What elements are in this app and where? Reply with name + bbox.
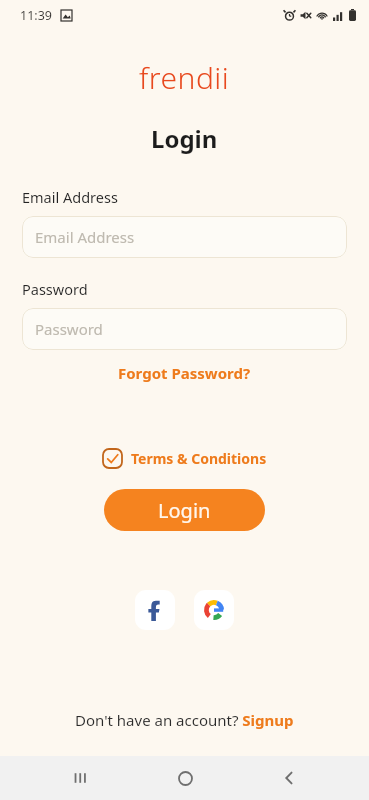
staticText: Login — [151, 122, 218, 155]
button[interactable]: Home — [161, 756, 209, 800]
staticText: frendii — [139, 57, 230, 98]
button[interactable]: Recents — [56, 756, 104, 800]
staticText: Email Address — [35, 227, 135, 247]
button[interactable]: Back — [265, 756, 313, 800]
button[interactable]: Password — [22, 308, 347, 350]
button[interactable]: Login — [104, 489, 265, 531]
staticText: Password — [35, 319, 103, 339]
button[interactable]: Forgot Password? — [0, 360, 369, 386]
staticText: Login — [158, 497, 211, 524]
staticText: 11:39 — [20, 7, 52, 24]
button[interactable]: Don't have an account? Signup — [0, 710, 369, 730]
button[interactable]: Sign in with Facebook — [135, 590, 175, 630]
button[interactable]: Email Address — [22, 216, 347, 258]
button[interactable]: Terms & Conditions — [98, 444, 271, 473]
staticText: Don't have an account? Signup — [75, 710, 294, 730]
staticText: Password — [22, 279, 88, 299]
staticText: Email Address — [22, 187, 118, 207]
staticText: Forgot Password? — [118, 363, 251, 383]
staticText: Terms & Conditions — [131, 449, 267, 468]
button[interactable]: Sign in with Google — [194, 590, 234, 630]
